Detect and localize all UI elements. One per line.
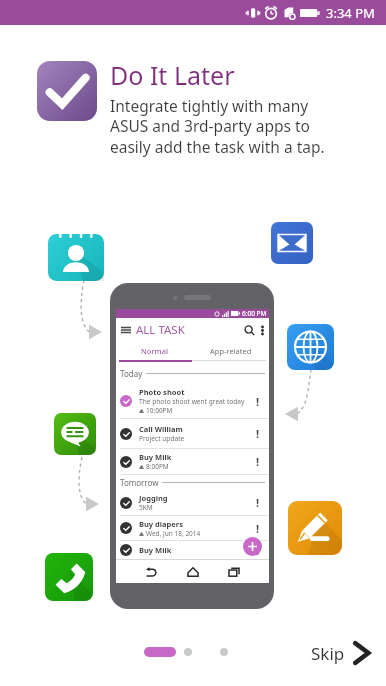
button[interactable]: Call William bbox=[120, 419, 265, 448]
button[interactable]: App-related bbox=[192, 342, 269, 360]
staticText: Jogging bbox=[139, 493, 168, 503]
button[interactable]: Normal bbox=[116, 342, 192, 360]
staticText: ! bbox=[256, 454, 260, 469]
staticText: ! bbox=[256, 426, 260, 441]
button[interactable]: Messaging bbox=[54, 413, 96, 455]
staticText: 5KM bbox=[139, 503, 153, 512]
button[interactable]: Jogging bbox=[120, 490, 265, 515]
staticText: Wed, Jun 18, 2014 bbox=[146, 529, 201, 538]
button[interactable]: Phone bbox=[45, 553, 93, 601]
button[interactable]: Email bbox=[271, 222, 313, 264]
staticText: Do It Later bbox=[110, 58, 235, 92]
staticText: ! bbox=[256, 394, 260, 409]
staticText: App-related bbox=[210, 346, 252, 356]
staticText: ALL TASK bbox=[136, 322, 185, 338]
button[interactable]: More options bbox=[261, 325, 264, 336]
button[interactable]: Search bbox=[244, 325, 255, 336]
staticText: Buy Milk bbox=[139, 545, 172, 555]
staticText: ! bbox=[256, 521, 260, 536]
button[interactable]: Buy diapers bbox=[120, 516, 265, 540]
staticText: Normal bbox=[141, 346, 168, 356]
staticText: ! bbox=[256, 543, 260, 558]
staticText: 10:00PM bbox=[146, 406, 173, 415]
button[interactable]: Browser bbox=[287, 324, 334, 370]
button[interactable]: Home bbox=[186, 565, 200, 579]
staticText: Today bbox=[120, 368, 143, 379]
staticText: Buy Milk bbox=[139, 452, 172, 462]
button[interactable]: Contacts bbox=[48, 231, 104, 281]
staticText: Project update bbox=[139, 434, 185, 443]
button[interactable]: Buy Milk bbox=[120, 449, 265, 474]
button[interactable]: Page 3 bbox=[220, 648, 228, 656]
button[interactable]: Recent apps bbox=[227, 565, 241, 579]
button[interactable]: Add task bbox=[243, 537, 262, 556]
button[interactable]: Page 1 bbox=[144, 647, 176, 657]
staticText: 6:00 PM bbox=[242, 309, 267, 318]
staticText: Photo shoot bbox=[139, 387, 185, 397]
staticText: ! bbox=[256, 495, 260, 510]
staticText: Skip bbox=[311, 642, 345, 665]
button[interactable]: Page 2 bbox=[184, 648, 192, 656]
button[interactable]: Photo shoot bbox=[120, 384, 265, 418]
button[interactable]: Menu bbox=[121, 325, 131, 335]
button[interactable]: Buy Milk bbox=[120, 541, 265, 559]
staticText: 3:34 PM bbox=[326, 4, 375, 22]
staticText: 8:00PM bbox=[146, 462, 169, 471]
staticText: Buy diapers bbox=[139, 519, 183, 529]
staticText: Call William bbox=[139, 424, 183, 434]
button[interactable]: Skip bbox=[305, 634, 378, 672]
staticText: Tomorrow bbox=[120, 477, 159, 488]
staticText: Integrate tightly with many ASUS and 3rd… bbox=[110, 95, 350, 158]
staticText: The photo shoot went great today bbox=[139, 397, 245, 406]
button[interactable]: Back bbox=[144, 565, 158, 579]
button[interactable]: Notes bbox=[288, 501, 342, 555]
